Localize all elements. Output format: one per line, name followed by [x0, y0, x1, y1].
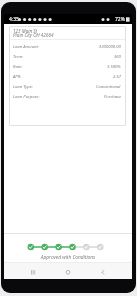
staticText: Loan Type: [13, 84, 33, 90]
button[interactable]: Back [93, 263, 113, 279]
staticText: Purchase [104, 94, 121, 100]
staticText: Plain City OH 42664 [13, 32, 54, 38]
staticText: 4:35 [9, 16, 19, 23]
staticText: $300000.00 [99, 44, 121, 50]
button[interactable]: Recents [23, 263, 43, 279]
staticText: 3.500% [107, 64, 121, 70]
staticText: Loan Purpose: [13, 94, 40, 100]
staticText: Loan Amount: [13, 44, 39, 50]
staticText: Term: [13, 54, 24, 60]
staticText: Conventional [96, 84, 121, 90]
staticText: APR: [13, 74, 22, 80]
staticText: 360 [114, 54, 121, 60]
staticText: 123 Main St [13, 28, 38, 34]
staticText: Approved with Conditions [4, 254, 132, 261]
button[interactable]: Home [58, 263, 78, 279]
staticText: 72% [115, 16, 125, 23]
button[interactable]: 123 Main St [9, 26, 126, 126]
staticText: Rate: [13, 64, 23, 70]
staticText: 2.67 [113, 74, 121, 80]
